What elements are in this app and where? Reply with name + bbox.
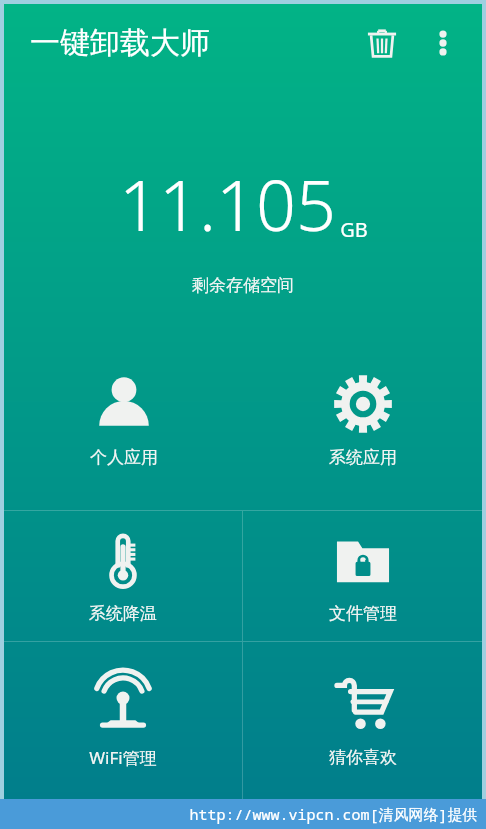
button[interactable]: 文件管理 (243, 511, 482, 641)
staticText: 系统降温 (89, 603, 157, 624)
staticText: 11.105 (119, 156, 336, 251)
staticText: 猜你喜欢 (329, 747, 397, 768)
button[interactable]: 系统降温 (4, 511, 242, 641)
button[interactable]: More options (418, 18, 468, 68)
button[interactable]: 猜你喜欢 (243, 642, 482, 799)
staticText: 文件管理 (329, 603, 397, 624)
staticText: WiFi管理 (89, 746, 157, 769)
staticText: GB (340, 216, 368, 243)
staticText: 系统应用 (329, 447, 397, 468)
staticText: 一键卸载大师 (30, 24, 210, 62)
button[interactable]: Delete (354, 15, 410, 71)
staticText: 剩余存储空间 (192, 275, 294, 296)
staticText: 个人应用 (90, 447, 158, 468)
button[interactable]: WiFi管理 (4, 642, 242, 799)
button[interactable]: 系统应用 (243, 330, 482, 510)
staticText: http://www.vipcn.com[清风网络]提供 (189, 804, 478, 824)
button[interactable]: 个人应用 (4, 330, 243, 510)
